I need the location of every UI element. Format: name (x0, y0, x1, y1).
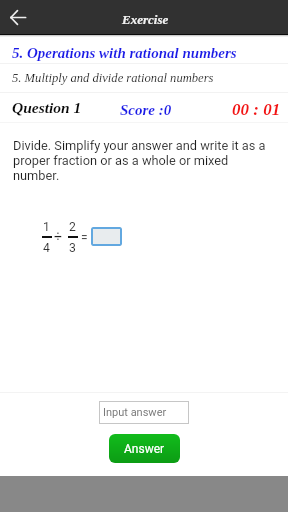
button[interactable]: Answer (109, 434, 180, 463)
staticText: 4 (43, 241, 50, 255)
staticText: ÷ (54, 228, 62, 244)
button[interactable] (91, 227, 122, 246)
staticText: Input answer (103, 406, 167, 419)
staticText: 5. Multiply and divide rational numbers (12, 71, 214, 85)
staticText: 2 (69, 220, 76, 234)
staticText: 5. Operations with rational numbers (12, 45, 237, 62)
staticText: Score :0 (120, 102, 172, 119)
staticText: 3 (69, 241, 76, 255)
staticText: = (81, 231, 88, 245)
staticText: Exercise (122, 12, 169, 26)
button[interactable]: Back (0, 0, 36, 34)
button[interactable]: Input answer (99, 401, 189, 424)
staticText: Answer (124, 442, 165, 456)
staticText: Divide. Simplify your answer and write i… (13, 138, 271, 183)
staticText: 1 (43, 220, 50, 234)
staticText: 00 : 01 (232, 100, 281, 119)
staticText: Question 1 (12, 99, 82, 116)
